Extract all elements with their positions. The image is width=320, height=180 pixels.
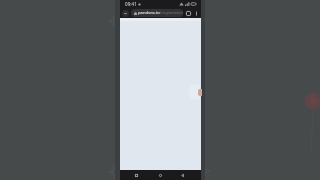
button[interactable]: Home — [155, 170, 166, 180]
button[interactable]: Back — [177, 170, 188, 180]
button[interactable]: pandora.to/registration?id=fa2b — [131, 9, 183, 17]
button[interactable]: Reload page — [122, 10, 129, 17]
button[interactable]: Feedback — [198, 89, 202, 96]
button[interactable]: Tabs — [185, 10, 192, 17]
button[interactable]: Recent apps — [131, 170, 142, 180]
button[interactable]: More options — [193, 10, 200, 17]
staticText: 09:41 — [125, 1, 137, 7]
staticText: pandora.to/registration?id=fa2b — [138, 10, 183, 16]
